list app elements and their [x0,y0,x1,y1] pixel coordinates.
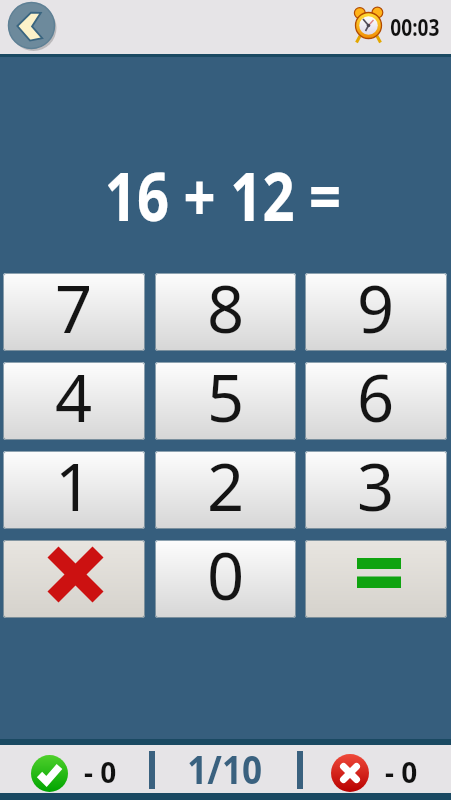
button[interactable]: 9 [305,273,447,351]
staticText: 2 [207,451,245,520]
staticText: 0 [207,540,245,609]
staticText: 3 [357,451,395,520]
button[interactable] [3,540,145,618]
staticText: 6 [357,362,395,431]
button[interactable] [8,2,55,49]
button[interactable]: 7 [3,273,145,351]
staticText: 5 [207,362,245,431]
button[interactable]: 0 [155,540,296,618]
button[interactable]: 2 [155,451,296,529]
button[interactable]: 8 [155,273,296,351]
staticText: 16 + 12 = [105,150,341,240]
staticText: 00:03 [390,10,440,43]
button[interactable]: 3 [305,451,447,529]
staticText: 4 [55,362,93,431]
staticText: - 0 [385,753,418,791]
staticText: 8 [207,273,245,342]
staticText: 1 [55,451,93,520]
staticText: - 0 [84,753,117,791]
staticText: 1/10 [187,741,263,787]
staticText: 7 [55,273,93,342]
button[interactable] [305,540,447,618]
button[interactable]: 6 [305,362,447,440]
button[interactable]: 1 [3,451,145,529]
button[interactable]: 5 [155,362,296,440]
staticText: 9 [357,273,395,342]
button[interactable]: 4 [3,362,145,440]
